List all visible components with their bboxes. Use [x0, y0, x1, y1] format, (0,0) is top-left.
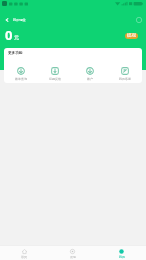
staticText: 我的客服 — [119, 77, 131, 81]
button[interactable]: 提现 — [125, 33, 138, 39]
staticText: 首页 — [21, 255, 27, 259]
button[interactable]: 我的客服 — [107, 67, 142, 81]
staticText: 元 — [14, 34, 19, 40]
button[interactable]: 问题反馈 — [38, 67, 72, 81]
staticText: 我的现金 — [13, 18, 26, 22]
button[interactable]: 我的 — [97, 246, 146, 259]
staticText: 问题反馈 — [49, 77, 61, 81]
button[interactable]: 账户 — [72, 67, 107, 81]
staticText: 账单查询 — [15, 77, 27, 81]
staticText: 账户 — [87, 77, 93, 81]
staticText: 我的 — [119, 255, 125, 259]
button[interactable]: Back — [1, 14, 12, 25]
button[interactable]: 发现 — [48, 246, 97, 259]
button[interactable]: Help — [133, 14, 144, 25]
staticText: 提现 — [127, 33, 136, 39]
staticText: 更多功能 — [8, 51, 23, 56]
button[interactable]: 首页 — [0, 246, 48, 259]
staticText: 0 — [5, 26, 13, 40]
button[interactable]: 账单查询 — [4, 67, 38, 81]
staticText: 发现 — [70, 255, 76, 259]
